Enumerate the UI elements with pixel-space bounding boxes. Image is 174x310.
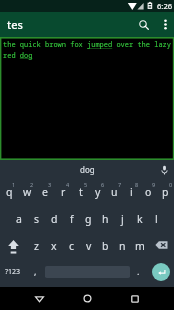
staticText: a xyxy=(16,212,22,226)
button[interactable]: c xyxy=(63,233,80,260)
staticText: ?123 xyxy=(5,267,21,277)
button[interactable]: Back xyxy=(25,287,53,310)
staticText: r xyxy=(61,185,66,199)
staticText: 6:26 xyxy=(157,1,173,11)
button[interactable]: l xyxy=(148,206,165,233)
button[interactable]: x xyxy=(45,233,63,260)
staticText: 7 xyxy=(118,181,122,188)
button[interactable]: , xyxy=(26,260,44,287)
button[interactable]: Recents xyxy=(121,287,149,310)
staticText: tes xyxy=(7,17,23,32)
staticText: z xyxy=(34,239,39,253)
button[interactable]: n xyxy=(114,233,131,260)
button[interactable]: 5 xyxy=(72,179,89,206)
button[interactable]: f xyxy=(63,206,80,233)
staticText: c xyxy=(69,239,75,253)
button[interactable]: Search xyxy=(132,13,156,36)
staticText: u xyxy=(111,185,118,199)
button[interactable]: 3 xyxy=(36,179,54,206)
staticText: 9 xyxy=(152,181,156,188)
button[interactable]: Backspace xyxy=(148,233,174,260)
staticText: d xyxy=(51,212,58,226)
button[interactable]: More options xyxy=(156,13,174,36)
staticText: 5 xyxy=(84,181,88,188)
button[interactable]: b xyxy=(97,233,114,260)
staticText: t xyxy=(79,185,83,199)
staticText: k xyxy=(137,212,143,226)
staticText: y xyxy=(95,185,101,199)
button[interactable]: ?123 xyxy=(0,260,26,287)
staticText: dog xyxy=(80,164,95,175)
staticText: e xyxy=(42,185,48,199)
button[interactable]: j xyxy=(114,206,131,233)
staticText: . xyxy=(137,265,140,277)
staticText: 3 xyxy=(48,181,52,188)
button[interactable]: 2 xyxy=(18,179,36,206)
button[interactable]: s xyxy=(28,206,46,233)
button[interactable]: 0 xyxy=(157,179,174,206)
button[interactable]: d xyxy=(46,206,63,233)
button[interactable]: Enter xyxy=(147,260,174,287)
button[interactable]: Shift xyxy=(0,233,27,260)
button[interactable]: v xyxy=(80,233,97,260)
staticText: h xyxy=(102,212,109,226)
staticText: 2 xyxy=(30,181,34,188)
button[interactable]: z xyxy=(27,233,45,260)
staticText: 8 xyxy=(135,181,139,188)
button[interactable]: 4 xyxy=(54,179,72,206)
staticText: v xyxy=(86,239,92,253)
button[interactable]: 6 xyxy=(89,179,106,206)
staticText: b xyxy=(102,239,109,253)
staticText: f xyxy=(70,212,74,226)
staticText: 0 xyxy=(169,181,173,188)
button[interactable]: 8 xyxy=(123,179,140,206)
staticText: q xyxy=(6,185,13,199)
button[interactable]: . xyxy=(130,260,147,287)
staticText: g xyxy=(85,212,92,226)
button[interactable]: a xyxy=(10,206,28,233)
button[interactable]: m xyxy=(131,233,148,260)
button[interactable]: 9 xyxy=(140,179,157,206)
staticText: n xyxy=(119,239,126,253)
staticText: m xyxy=(135,239,145,253)
staticText: o xyxy=(145,185,152,199)
staticText: the quick brown fox jumped over the lazy… xyxy=(3,40,172,60)
staticText: , xyxy=(34,265,37,277)
staticText: j xyxy=(121,212,124,226)
button[interactable]: 1 xyxy=(0,179,18,206)
staticText: l xyxy=(155,212,158,226)
button[interactable]: 7 xyxy=(106,179,123,206)
staticText: x xyxy=(51,239,57,253)
button[interactable]: Voice input xyxy=(155,160,174,179)
staticText: w xyxy=(23,185,32,199)
staticText: i xyxy=(130,185,133,199)
staticText: 4 xyxy=(66,181,70,188)
staticText: 1 xyxy=(12,181,16,188)
staticText: s xyxy=(34,212,40,226)
button[interactable]: k xyxy=(131,206,148,233)
staticText: 6 xyxy=(101,181,105,188)
button[interactable]: g xyxy=(80,206,97,233)
staticText: p xyxy=(162,185,169,199)
button[interactable]: Home xyxy=(73,287,101,310)
button[interactable]: h xyxy=(97,206,114,233)
